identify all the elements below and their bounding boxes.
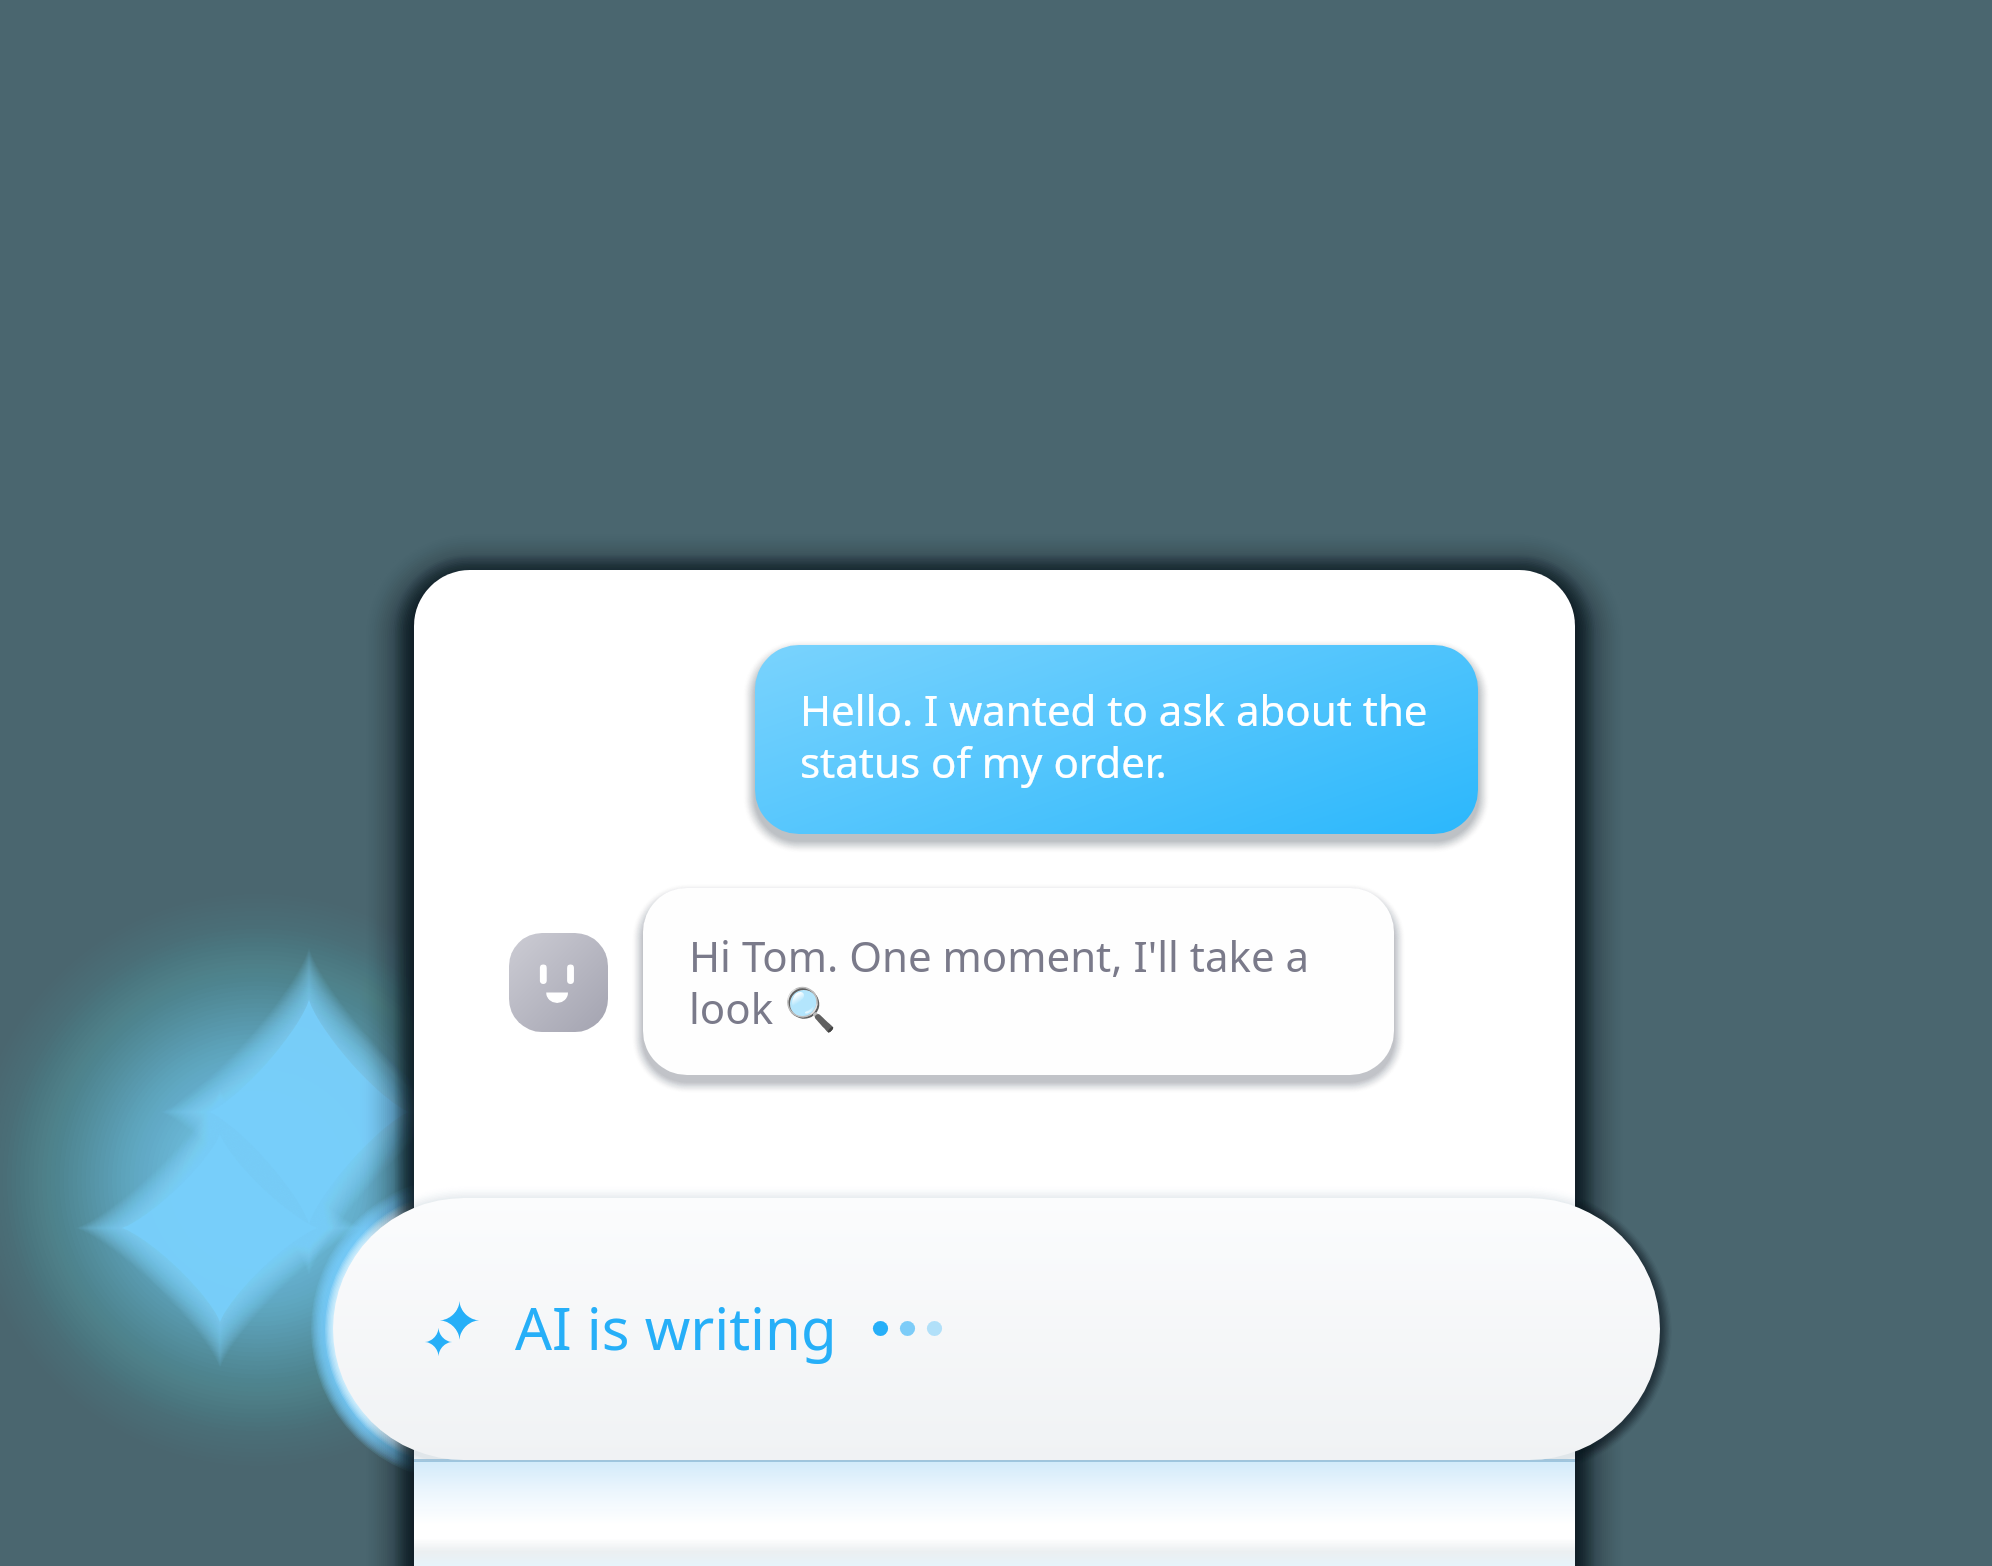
staticText: Hi Tom. One moment, I'll take a look 🔍 <box>689 927 1310 1036</box>
other: AI sparkle <box>419 1284 483 1348</box>
button[interactable]: Assistant avatar <box>509 933 608 1032</box>
staticText: Hello. I wanted to ask about the status … <box>800 681 1428 790</box>
staticText: AI is writing <box>515 1288 837 1367</box>
button[interactable]: Hello. I wanted to ask about the status … <box>755 645 1478 834</box>
button[interactable]: Hi Tom. One moment, I'll take a look 🔍 <box>643 888 1394 1075</box>
button[interactable]: AI sparkle <box>333 1198 1660 1460</box>
